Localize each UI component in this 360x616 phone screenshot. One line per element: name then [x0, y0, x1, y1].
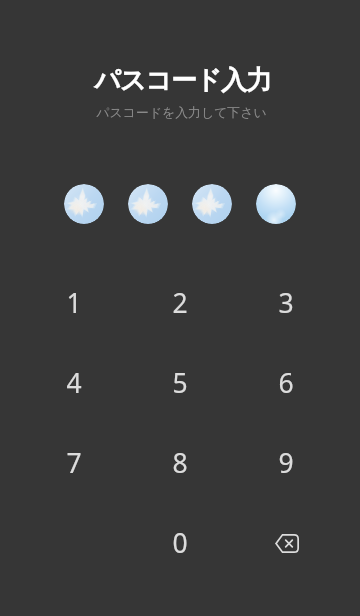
button[interactable]: 3: [233, 263, 339, 343]
button[interactable]: Delete last digit: [233, 503, 339, 583]
staticText: パスコード入力: [94, 64, 271, 97]
button[interactable]: 1: [21, 263, 127, 343]
button[interactable]: 2: [127, 263, 233, 343]
staticText: パスコードを入力して下さい: [96, 105, 267, 121]
staticText: 5: [172, 365, 188, 401]
staticText: 0: [172, 525, 188, 561]
staticText: 3: [278, 285, 294, 321]
staticText: 2: [172, 285, 188, 321]
button[interactable]: 7: [21, 423, 127, 503]
staticText: 9: [278, 445, 294, 481]
button[interactable]: 5: [127, 343, 233, 423]
button[interactable]: 9: [233, 423, 339, 503]
staticText: 6: [278, 365, 294, 401]
button[interactable]: 0: [127, 503, 233, 583]
staticText: 1: [66, 285, 82, 321]
button[interactable]: 8: [127, 423, 233, 503]
staticText: 8: [172, 445, 188, 481]
button[interactable]: 6: [233, 343, 339, 423]
button[interactable]: 4: [21, 343, 127, 423]
staticText: 7: [66, 445, 82, 481]
staticText: 4: [66, 365, 82, 401]
